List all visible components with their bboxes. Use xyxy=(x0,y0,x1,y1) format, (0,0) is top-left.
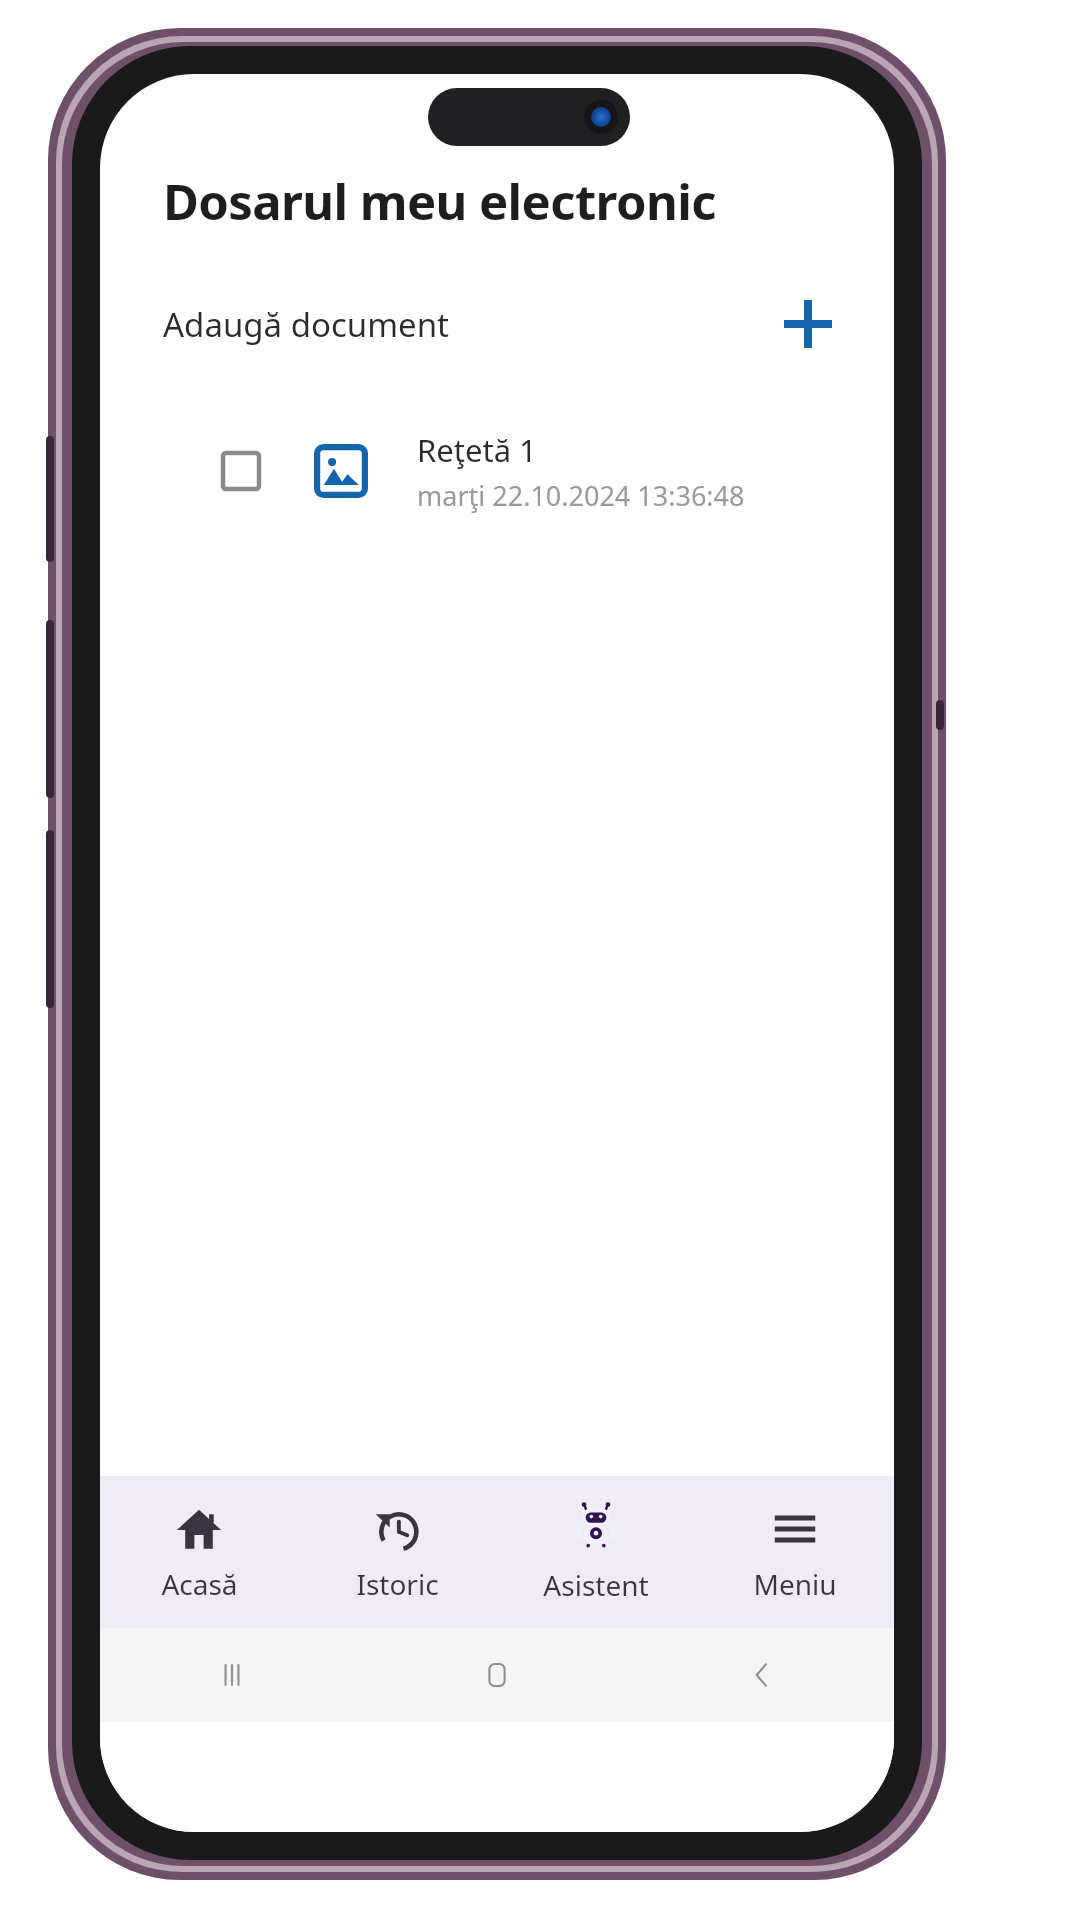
button[interactable]: Selectează document xyxy=(100,419,894,523)
staticText: Dosarul meu electronic xyxy=(163,168,716,235)
staticText: Meniu xyxy=(753,1565,837,1603)
button[interactable]: Meniu xyxy=(695,1476,894,1628)
staticText: Istoric xyxy=(356,1565,439,1603)
staticText: Asistent xyxy=(543,1566,649,1604)
button[interactable]: Back xyxy=(629,1628,894,1722)
staticText: marţi 22.10.2024 13:36:48 xyxy=(417,477,745,514)
button[interactable]: Recents xyxy=(100,1628,364,1722)
staticText: Reţetă 1 xyxy=(417,429,537,471)
button[interactable]: Acasă xyxy=(100,1476,298,1628)
button[interactable]: Home xyxy=(364,1628,629,1722)
staticText: Adaugă document xyxy=(163,302,449,347)
staticText: Acasă xyxy=(161,1565,238,1603)
other: Selectează document xyxy=(215,445,267,497)
button[interactable]: Asistent xyxy=(496,1476,695,1628)
button[interactable]: Istoric xyxy=(298,1476,496,1628)
button[interactable]: Adaugă document xyxy=(100,285,894,363)
other: Adaugă document xyxy=(780,296,836,352)
